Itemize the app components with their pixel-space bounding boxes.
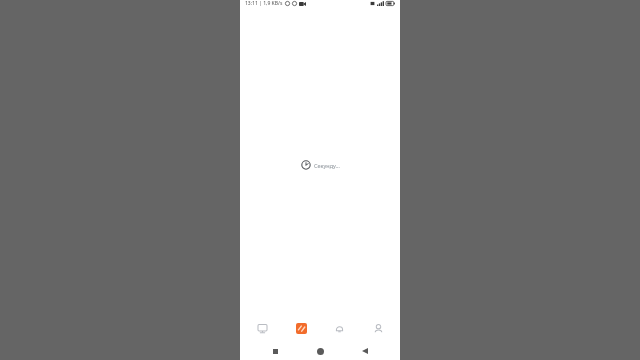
button[interactable]: Uvedomleniya — [322, 314, 356, 342]
staticText: Секунду… — [314, 162, 340, 169]
staticText: 13:11 | 1,9 KB/s — [245, 0, 283, 7]
button[interactable]: Recents — [265, 342, 285, 360]
button[interactable]: Back — [355, 342, 375, 360]
button[interactable]: Секунду… — [301, 160, 340, 170]
button[interactable]: Zadachi — [284, 314, 318, 342]
button[interactable]: Lenta — [245, 314, 279, 342]
button[interactable]: Profil — [361, 314, 395, 342]
button[interactable]: Home — [310, 342, 330, 360]
